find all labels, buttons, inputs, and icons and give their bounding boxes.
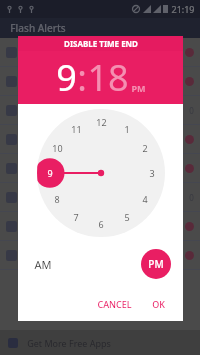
staticText: DISABLE TIME END [64, 38, 138, 49]
button[interactable]: Get More Free Apps [0, 330, 200, 355]
button[interactable] [0, 212, 200, 240]
staticText: 2 [142, 142, 148, 154]
staticText: 5 [124, 211, 130, 223]
staticText: AM [34, 257, 52, 272]
staticText: 0 [189, 192, 194, 203]
button[interactable]: OK [146, 294, 171, 314]
staticText: : [77, 53, 87, 102]
staticText: 12 [96, 116, 107, 128]
button[interactable]: 8 [47, 189, 67, 209]
button[interactable]: 7 [66, 207, 86, 227]
staticText: 8 [54, 193, 60, 205]
staticText: 1 [124, 123, 130, 135]
button[interactable]: 3 [142, 163, 162, 183]
staticText: CANCEL [97, 298, 132, 310]
button[interactable]: PM [131, 82, 146, 94]
button[interactable]: CANCEL [91, 294, 138, 314]
button[interactable] [0, 241, 200, 269]
button[interactable]: 11 [66, 119, 86, 139]
button[interactable]: 5 [117, 207, 137, 227]
button[interactable] [0, 67, 200, 95]
staticText: 11 [71, 123, 82, 135]
button[interactable] [0, 154, 200, 182]
staticText: Flash Alerts [10, 21, 66, 35]
button[interactable]: AM [30, 253, 56, 276]
button[interactable]: 1 [117, 119, 137, 139]
button[interactable]: 18 [87, 53, 129, 102]
staticText: 4 [142, 193, 148, 205]
button[interactable]: 0 [0, 183, 200, 211]
staticText: 3 [149, 167, 155, 179]
other: Clock face, hour 9 selected [37, 109, 165, 237]
staticText: 0 [189, 105, 194, 116]
button[interactable]: 2 [135, 138, 155, 158]
staticText: 7 [73, 211, 79, 223]
button[interactable] [0, 38, 200, 66]
staticText: Get More Free Apps [27, 337, 111, 349]
button[interactable]: 9 [56, 53, 77, 102]
button[interactable]: 4 [135, 189, 155, 209]
button[interactable]: 0 [0, 96, 200, 124]
staticText: OK [152, 298, 165, 310]
staticText: 10 [52, 142, 63, 154]
staticText: 9 [47, 167, 53, 179]
button[interactable]: 12 [91, 112, 111, 132]
button[interactable]: 6 [91, 214, 111, 234]
staticText: 21:19 [171, 3, 195, 15]
staticText: 6 [98, 218, 104, 230]
button[interactable]: 10 [47, 138, 67, 158]
button[interactable]: 9 [40, 163, 60, 183]
button[interactable]: PM [141, 249, 171, 279]
button[interactable] [0, 125, 200, 153]
staticText: PM [148, 257, 164, 271]
